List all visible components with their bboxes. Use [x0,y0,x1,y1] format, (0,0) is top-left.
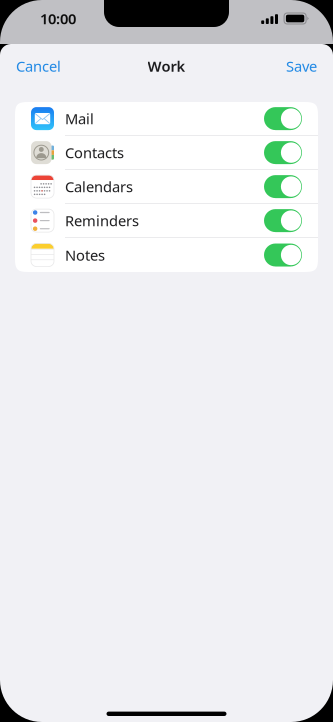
button[interactable]: Calendars [15,170,318,204]
button[interactable]: Mail [15,102,318,136]
staticText: Contacts [65,143,124,162]
staticText: Notes [65,245,105,265]
button[interactable]: Reminders [15,204,318,238]
button[interactable]: Notes [15,238,318,272]
staticText: Calendars [65,177,133,196]
staticText: 10:00 [40,9,76,28]
staticText: Mail [65,109,94,128]
staticText: Cancel [16,56,61,76]
button[interactable]: Contacts [15,136,318,170]
staticText: Reminders [65,211,139,230]
staticText: Work [147,56,185,76]
staticText: Save [286,56,317,76]
button[interactable]: Save [270,49,333,83]
button[interactable]: Cancel [0,49,77,83]
